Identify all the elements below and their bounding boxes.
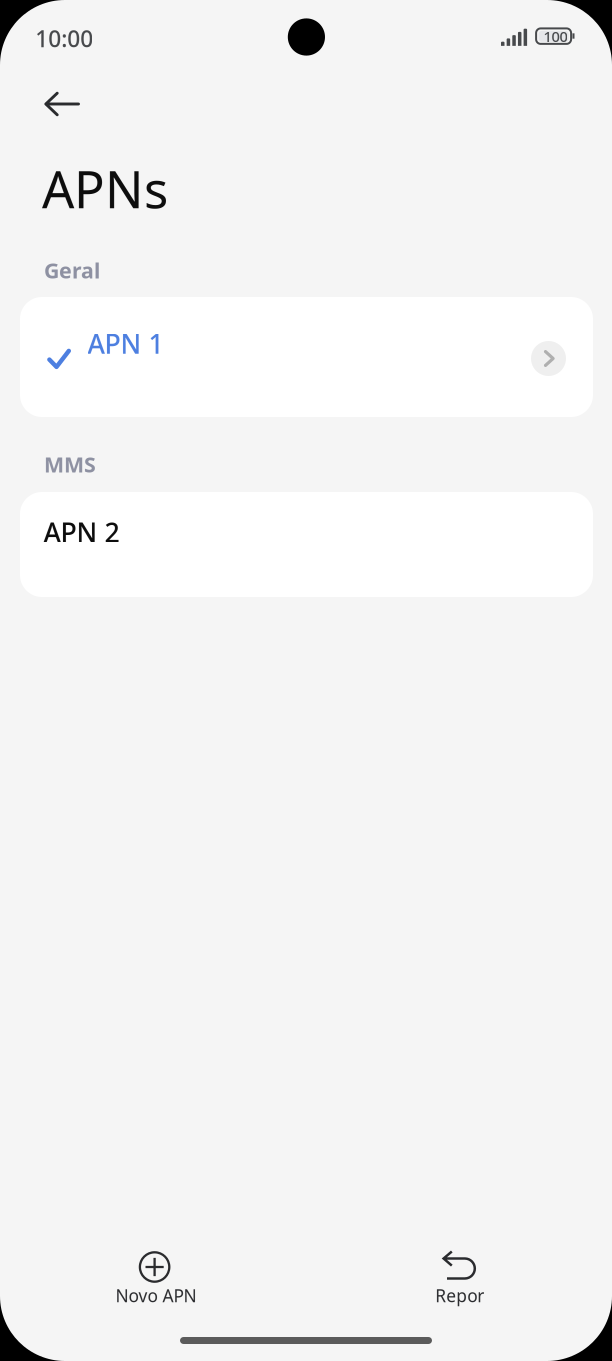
staticText: MMS xyxy=(44,450,96,478)
staticText: APNs xyxy=(42,155,168,222)
button[interactable]: APN 1 xyxy=(20,297,593,417)
staticText: Repor xyxy=(435,1284,484,1307)
button[interactable]: Novo APN xyxy=(44,1240,266,1316)
button[interactable]: APN 2 xyxy=(20,492,593,597)
staticText: APN 1 xyxy=(87,326,163,361)
staticText: 10:00 xyxy=(35,23,93,53)
staticText: 100 xyxy=(543,27,567,46)
staticText: Geral xyxy=(44,256,100,284)
staticText: APN 2 xyxy=(43,514,119,550)
button[interactable]: Repor xyxy=(347,1240,569,1316)
button[interactable]: Back xyxy=(28,79,98,131)
staticText: Novo APN xyxy=(115,1284,196,1307)
